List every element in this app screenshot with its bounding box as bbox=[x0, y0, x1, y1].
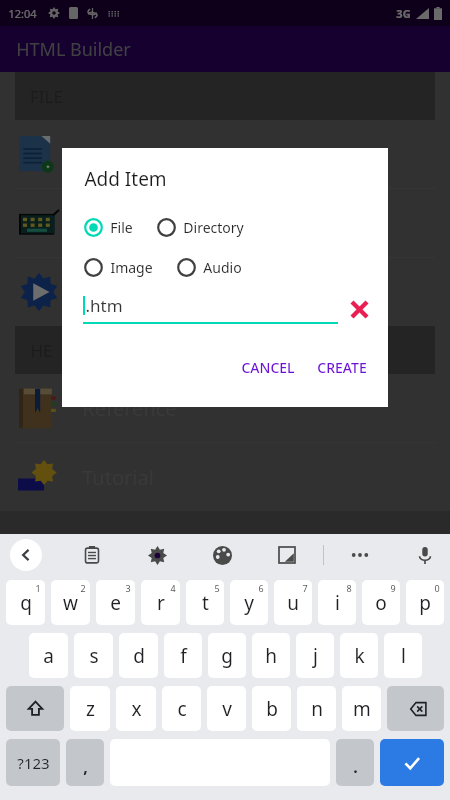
button[interactable]: p bbox=[406, 580, 444, 625]
button[interactable] bbox=[0, 258, 450, 326]
button[interactable]: b bbox=[252, 686, 291, 731]
staticText: q bbox=[20, 590, 32, 616]
button[interactable]: Tutorial bbox=[0, 443, 450, 511]
button[interactable]: t bbox=[186, 580, 224, 625]
staticText: 12:04 bbox=[8, 6, 37, 21]
button[interactable]: y bbox=[230, 580, 268, 625]
button[interactable]: x bbox=[116, 686, 156, 731]
staticText: 1 bbox=[35, 582, 41, 594]
staticText: CANCEL bbox=[241, 358, 295, 377]
button[interactable]: s bbox=[74, 633, 113, 678]
button[interactable]: Clipboard bbox=[77, 540, 107, 570]
button[interactable]: c bbox=[162, 686, 201, 731]
button[interactable]: Back bbox=[10, 539, 42, 571]
button[interactable]: h bbox=[252, 633, 290, 678]
staticText: f bbox=[180, 643, 187, 669]
button[interactable]: Audio bbox=[176, 255, 243, 280]
button[interactable]: a bbox=[29, 633, 68, 678]
button[interactable]: Reference bbox=[0, 374, 450, 442]
staticText: c bbox=[177, 696, 187, 722]
staticText: File bbox=[110, 218, 133, 237]
staticText: 9 bbox=[390, 582, 396, 594]
button[interactable]: n bbox=[297, 686, 336, 731]
staticText: Reference bbox=[82, 395, 177, 422]
button[interactable] bbox=[387, 686, 444, 731]
staticText: p bbox=[419, 590, 431, 616]
button[interactable]: Voice input bbox=[410, 540, 440, 570]
button[interactable]: f bbox=[164, 633, 202, 678]
staticText: Directory bbox=[183, 218, 244, 237]
staticText: CREATE bbox=[317, 358, 367, 377]
staticText: u bbox=[287, 590, 299, 616]
button[interactable]: r bbox=[141, 580, 180, 625]
staticText: 8 bbox=[346, 582, 352, 594]
staticText: Image bbox=[110, 258, 153, 277]
button[interactable]: ?123 bbox=[6, 739, 60, 786]
button[interactable]: v bbox=[207, 686, 246, 731]
button[interactable]: CREATE bbox=[312, 352, 372, 383]
button[interactable]: o bbox=[362, 580, 400, 625]
button[interactable]: Clear text bbox=[348, 295, 370, 323]
staticText: .htm bbox=[85, 294, 123, 317]
staticText: 3 bbox=[125, 582, 131, 594]
button[interactable]: u bbox=[274, 580, 312, 625]
button[interactable]: File bbox=[83, 215, 134, 240]
button[interactable]: Resize bbox=[272, 540, 302, 570]
staticText: ?123 bbox=[17, 753, 50, 773]
staticText: h bbox=[265, 643, 277, 669]
button[interactable]: d bbox=[119, 633, 158, 678]
staticText: Add Item bbox=[84, 166, 167, 192]
button[interactable]: l bbox=[384, 633, 422, 678]
button[interactable]: k bbox=[340, 633, 378, 678]
button[interactable]: Directory bbox=[156, 215, 245, 240]
staticText: t bbox=[202, 590, 209, 616]
staticText: . bbox=[353, 756, 358, 778]
button[interactable]: j bbox=[296, 633, 334, 678]
button[interactable] bbox=[380, 739, 444, 786]
button[interactable]: w bbox=[51, 580, 90, 625]
button[interactable]: Image bbox=[83, 255, 154, 280]
staticText: l bbox=[401, 643, 406, 669]
button[interactable]: e bbox=[96, 580, 135, 625]
staticText: v bbox=[222, 696, 232, 722]
button[interactable]: More options bbox=[345, 540, 375, 570]
staticText: x bbox=[131, 696, 142, 722]
staticText: 2 bbox=[80, 582, 86, 594]
button[interactable]: q bbox=[6, 580, 45, 625]
staticText: b bbox=[266, 696, 278, 722]
button[interactable] bbox=[0, 120, 450, 188]
staticText: 3G bbox=[396, 6, 411, 21]
staticText: d bbox=[133, 643, 145, 669]
staticText: , bbox=[83, 756, 88, 778]
staticText: n bbox=[311, 696, 323, 722]
staticText: 5 bbox=[214, 582, 220, 594]
button[interactable]: z bbox=[70, 686, 110, 731]
button[interactable]: CANCEL bbox=[236, 352, 300, 383]
staticText: i bbox=[335, 590, 340, 616]
staticText: g bbox=[221, 643, 233, 669]
button[interactable] bbox=[0, 189, 450, 257]
button[interactable]: . bbox=[336, 739, 374, 786]
button[interactable] bbox=[6, 686, 64, 731]
button[interactable]: Theme bbox=[207, 540, 237, 570]
staticText: e bbox=[110, 590, 121, 616]
button[interactable]: Settings bbox=[142, 540, 172, 570]
staticText: w bbox=[63, 590, 78, 616]
staticText: 4 bbox=[170, 582, 176, 594]
staticText: y bbox=[244, 590, 254, 616]
staticText: s bbox=[89, 643, 99, 669]
button[interactable]: g bbox=[208, 633, 246, 678]
staticText: HTML Builder bbox=[16, 37, 131, 62]
staticText: o bbox=[375, 590, 387, 616]
staticText: m bbox=[353, 696, 371, 722]
staticText: k bbox=[354, 643, 365, 669]
button[interactable]: , bbox=[66, 739, 104, 786]
staticText: 6 bbox=[258, 582, 264, 594]
button[interactable]: m bbox=[342, 686, 381, 731]
staticText: 0 bbox=[434, 582, 440, 594]
button[interactable]: i bbox=[318, 580, 356, 625]
staticText: r bbox=[157, 590, 165, 616]
